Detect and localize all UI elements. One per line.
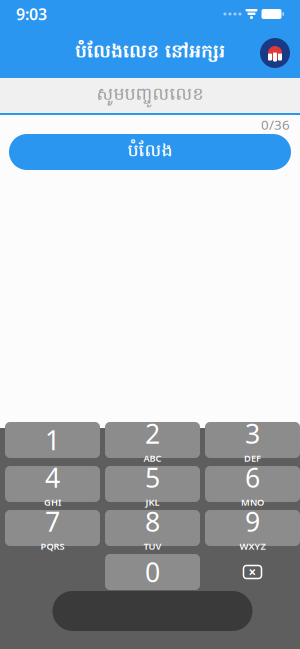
staticText: 4 bbox=[45, 460, 60, 495]
button[interactable]: បំលែង bbox=[9, 134, 291, 170]
button[interactable]: Cambodia language bbox=[260, 38, 290, 68]
staticText: 9 bbox=[245, 504, 260, 539]
staticText: TUV bbox=[143, 540, 161, 552]
staticText: JKL bbox=[145, 496, 159, 508]
staticText: GHI bbox=[44, 496, 61, 508]
button[interactable]: 1 bbox=[5, 422, 100, 458]
staticText: 5 bbox=[145, 460, 160, 495]
button[interactable]: 5 bbox=[105, 466, 200, 502]
staticText: 1 bbox=[45, 422, 60, 458]
staticText: 8 bbox=[145, 504, 160, 539]
staticText: 0 bbox=[145, 554, 160, 590]
staticText: 9:03 bbox=[16, 3, 47, 25]
staticText: 3 bbox=[245, 416, 260, 451]
staticText: × bbox=[248, 563, 256, 581]
staticText: 7 bbox=[45, 504, 60, 539]
button[interactable]: 9 bbox=[205, 510, 300, 546]
button[interactable]: 2 bbox=[105, 422, 200, 458]
staticText: PQRS bbox=[40, 540, 64, 552]
staticText: MNO bbox=[241, 496, 264, 508]
button[interactable]: 6 bbox=[205, 466, 300, 502]
staticText: 0/36 bbox=[261, 116, 290, 133]
button[interactable]: 0 bbox=[105, 554, 200, 590]
staticText: 2 bbox=[145, 416, 160, 451]
button[interactable]: 4 bbox=[5, 466, 100, 502]
staticText: ABC bbox=[143, 452, 161, 464]
staticText: បំលែង bbox=[127, 140, 172, 164]
button[interactable]: 8 bbox=[105, 510, 200, 546]
staticText: បំលែងលេខ នៅអក្សរ bbox=[75, 40, 225, 66]
staticText: WXYZ bbox=[239, 540, 265, 552]
button[interactable]: 3 bbox=[205, 422, 300, 458]
button[interactable]: 7 bbox=[5, 510, 100, 546]
button[interactable]: Delete bbox=[205, 554, 300, 590]
staticText: 6 bbox=[245, 460, 260, 495]
staticText: DEF bbox=[244, 452, 261, 464]
staticText: សូមបញ្ចូលលេខ bbox=[96, 83, 203, 108]
